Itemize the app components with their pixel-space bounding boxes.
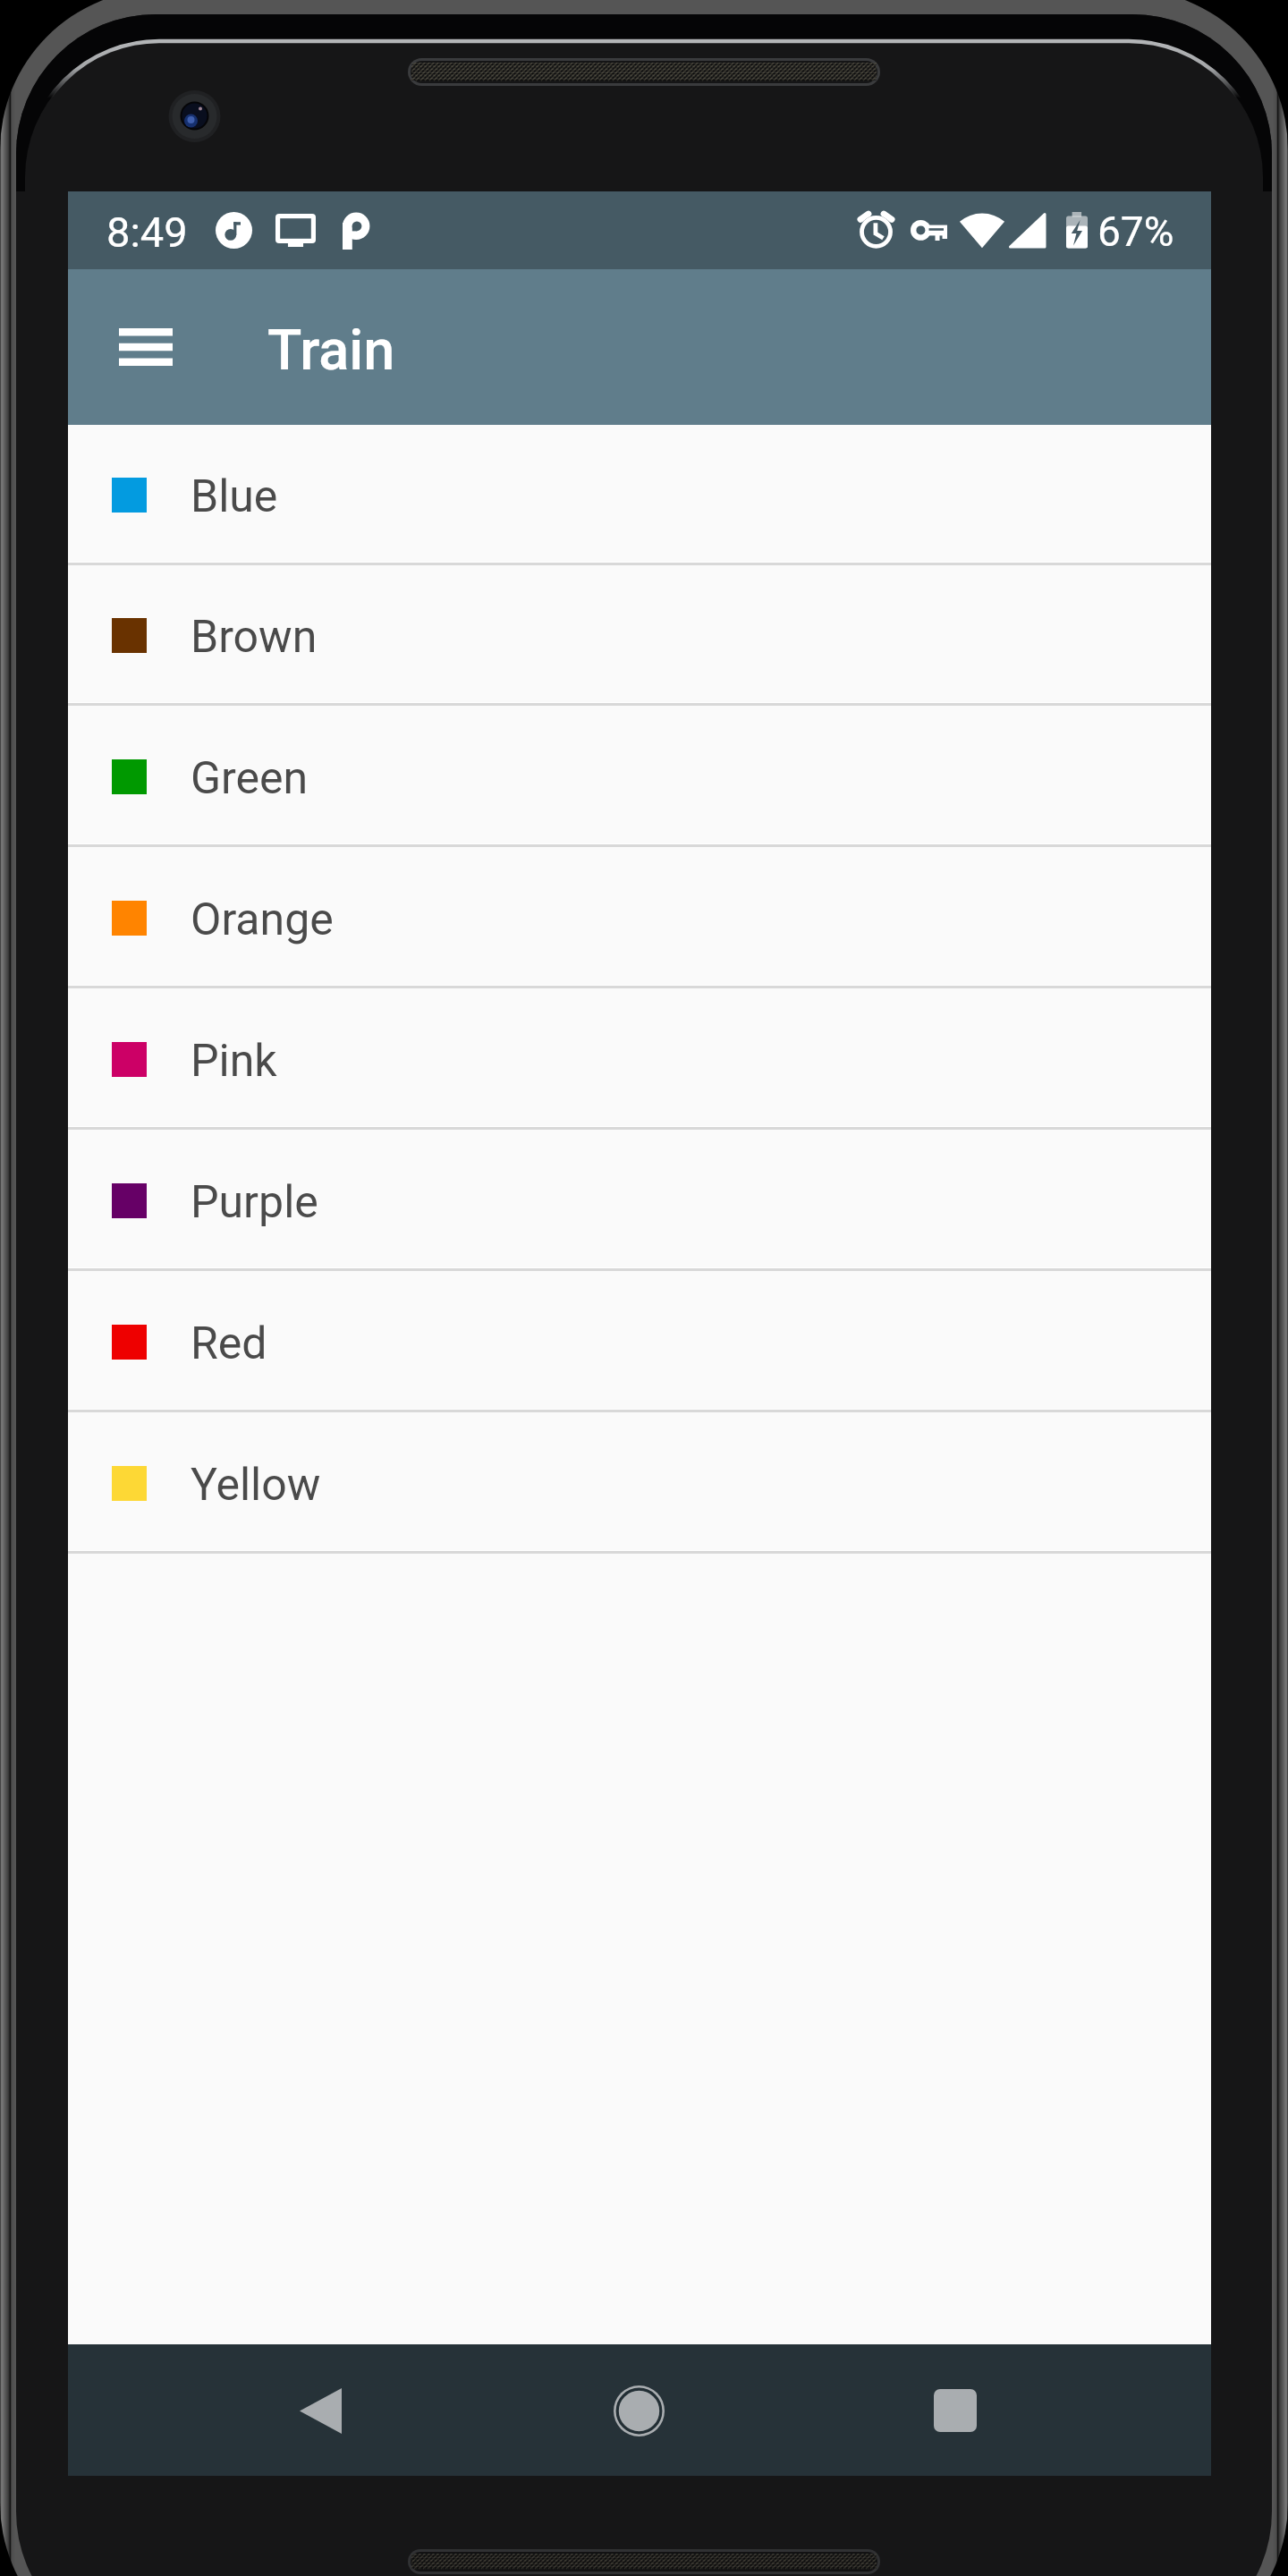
staticText: Orange — [191, 894, 334, 946]
staticText: Yellow — [191, 1459, 321, 1512]
staticText: Train — [267, 318, 395, 384]
staticText: Blue — [191, 470, 278, 523]
staticText: Pink — [191, 1035, 277, 1088]
button[interactable]: Back — [267, 2357, 374, 2464]
button[interactable]: Home — [585, 2357, 692, 2464]
button[interactable]: Brown — [68, 565, 1211, 706]
button[interactable]: Orange — [68, 847, 1211, 988]
button[interactable]: Yellow — [68, 1412, 1211, 1554]
button[interactable]: Blue — [68, 425, 1211, 565]
staticText: Purple — [191, 1176, 318, 1229]
staticText: 67% — [1097, 208, 1174, 256]
button[interactable]: Open navigation drawer — [94, 295, 198, 399]
staticText: Red — [191, 1318, 267, 1370]
staticText: Brown — [191, 611, 318, 664]
button[interactable]: Purple — [68, 1130, 1211, 1271]
button[interactable]: Green — [68, 706, 1211, 847]
button[interactable]: Red — [68, 1271, 1211, 1412]
staticText: 8:49 — [106, 208, 188, 257]
button[interactable]: Recent apps — [902, 2357, 1009, 2464]
staticText: Green — [191, 752, 309, 805]
button[interactable]: Pink — [68, 988, 1211, 1130]
